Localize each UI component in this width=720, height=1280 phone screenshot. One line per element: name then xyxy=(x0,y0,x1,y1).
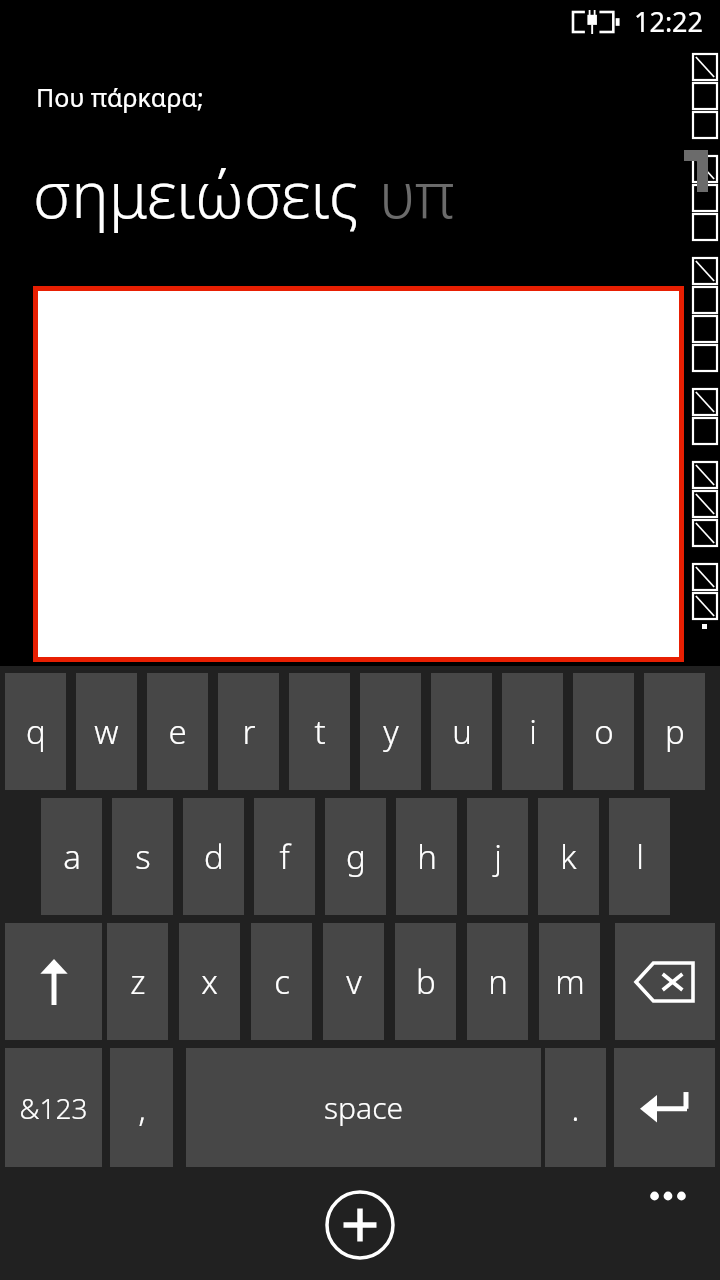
button[interactable]: , xyxy=(110,1048,173,1167)
staticText: f xyxy=(279,834,290,879)
staticText: s xyxy=(135,834,151,879)
staticText: d xyxy=(204,834,224,879)
button[interactable]: . xyxy=(545,1048,606,1167)
button[interactable]: x xyxy=(179,923,240,1040)
button[interactable]: p xyxy=(644,673,705,790)
button[interactable]: &123 xyxy=(5,1048,102,1167)
staticText: q xyxy=(26,709,46,754)
button[interactable]: j xyxy=(467,798,528,915)
button[interactable]: s xyxy=(112,798,173,915)
staticText: e xyxy=(168,709,187,754)
button[interactable]: k xyxy=(538,798,599,915)
staticText: c xyxy=(274,959,290,1004)
staticText: σημειώσεις xyxy=(33,150,359,237)
button[interactable]: g xyxy=(325,798,386,915)
staticText: r xyxy=(242,709,256,754)
staticText: t xyxy=(314,709,326,754)
button[interactable]: u xyxy=(431,673,492,790)
button[interactable]: i xyxy=(502,673,563,790)
button[interactable]: l xyxy=(609,798,670,915)
button[interactable]: m xyxy=(539,923,600,1040)
button[interactable]: e xyxy=(147,673,208,790)
staticText: m xyxy=(555,959,585,1004)
button[interactable]: d xyxy=(183,798,244,915)
staticText: i xyxy=(529,709,537,754)
button[interactable]: f xyxy=(254,798,315,915)
staticText: l xyxy=(636,834,644,879)
button[interactable]: a xyxy=(41,798,102,915)
staticText: o xyxy=(594,709,614,754)
staticText: h xyxy=(417,834,437,879)
staticText: a xyxy=(63,834,81,879)
staticText: u xyxy=(452,709,472,754)
staticText: space xyxy=(324,1087,403,1128)
staticText: k xyxy=(560,834,577,879)
staticText: 12:22 xyxy=(634,3,704,40)
button[interactable]: space xyxy=(186,1048,541,1167)
staticText: v xyxy=(346,959,362,1004)
staticText: x xyxy=(201,959,218,1004)
button[interactable]: More options xyxy=(628,1172,708,1220)
staticText: z xyxy=(130,959,146,1004)
button[interactable]: b xyxy=(395,923,456,1040)
button[interactable]: n xyxy=(467,923,528,1040)
button[interactable]: Shift xyxy=(5,923,102,1040)
button[interactable]: o xyxy=(573,673,634,790)
staticText: w xyxy=(94,709,119,754)
button[interactable]: Enter xyxy=(614,1048,715,1167)
staticText: υπ xyxy=(379,150,455,237)
button[interactable]: Note text field xyxy=(33,286,684,662)
button[interactable]: Backspace xyxy=(615,923,715,1040)
button[interactable]: q xyxy=(5,673,66,790)
staticText: b xyxy=(416,959,436,1004)
button[interactable]: t xyxy=(289,673,350,790)
button[interactable]: New note xyxy=(325,1190,395,1260)
other: Battery charging xyxy=(572,10,628,34)
staticText: g xyxy=(346,834,366,879)
staticText: Που πάρκαρα; xyxy=(36,80,204,114)
staticText: n xyxy=(488,959,508,1004)
button[interactable]: h xyxy=(396,798,457,915)
button[interactable]: y xyxy=(360,673,421,790)
staticText: y xyxy=(383,709,399,754)
button[interactable]: w xyxy=(76,673,137,790)
button[interactable]: v xyxy=(323,923,384,1040)
button[interactable]: c xyxy=(251,923,312,1040)
staticText: , xyxy=(138,1085,146,1131)
staticText: &123 xyxy=(19,1089,88,1127)
staticText: p xyxy=(665,709,685,754)
button[interactable]: z xyxy=(107,923,168,1040)
button[interactable]: r xyxy=(218,673,279,790)
staticText: j xyxy=(494,834,502,879)
staticText: . xyxy=(571,1085,580,1131)
